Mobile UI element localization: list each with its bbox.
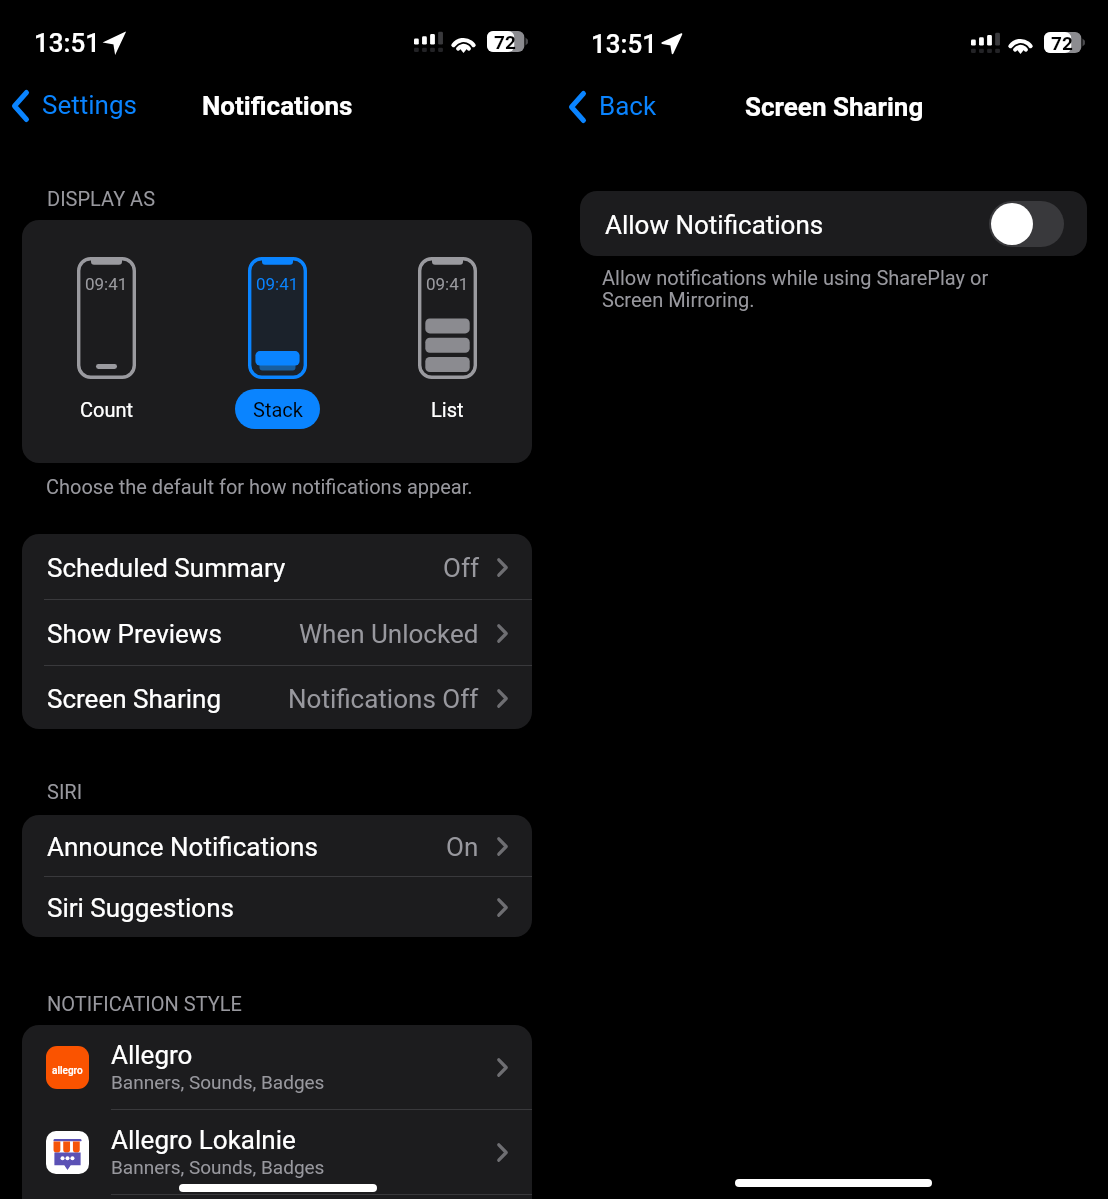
staticText: Allegro xyxy=(111,1040,193,1070)
staticText: SIRI xyxy=(47,780,83,803)
button[interactable]: Scheduled Summary xyxy=(22,534,532,599)
staticText: Banners, Sounds, Badges xyxy=(111,1156,325,1178)
staticText: When Unlocked xyxy=(299,619,479,649)
staticText: 13:51 xyxy=(34,28,101,58)
staticText: NOTIFICATION STYLE xyxy=(47,992,242,1015)
button[interactable]: Announce Notifications xyxy=(22,815,532,876)
button[interactable]: Allow Notifications toggle, off xyxy=(989,201,1064,247)
staticText: Allow notifications while using SharePla… xyxy=(602,266,989,312)
staticText: Screen Sharing xyxy=(745,92,924,122)
button[interactable]: Allow Notifications xyxy=(580,191,1087,256)
button[interactable]: 09:41 xyxy=(47,220,166,429)
staticText: Siri Suggestions xyxy=(47,893,234,923)
staticText: allegro xyxy=(52,1065,83,1077)
button[interactable]: Show Previews xyxy=(22,600,532,665)
staticText: Show Previews xyxy=(47,619,222,649)
button[interactable]: Back to Settings xyxy=(6,88,145,124)
staticText: Settings xyxy=(42,90,137,120)
button[interactable]: Back to Back xyxy=(563,89,665,125)
button[interactable]: allegro xyxy=(22,1025,532,1109)
staticText: 72 xyxy=(1051,32,1073,54)
staticText: Banners, Sounds, Badges xyxy=(111,1071,325,1093)
staticText: Allow Notifications xyxy=(605,210,824,240)
staticText: Count xyxy=(80,398,134,421)
staticText: List xyxy=(431,398,464,421)
staticText: Back xyxy=(599,91,657,121)
button[interactable]: Screen Sharing xyxy=(22,666,532,729)
staticText: Allegro Lokalnie xyxy=(111,1125,296,1155)
staticText: Announce Notifications xyxy=(47,832,318,862)
staticText: Screen Sharing xyxy=(47,684,221,714)
staticText: Notifications Off xyxy=(288,684,479,714)
staticText: Stack xyxy=(253,398,303,421)
staticText: 09:41 xyxy=(85,274,128,294)
staticText: 72 xyxy=(494,31,516,53)
button[interactable]: 09:41 xyxy=(218,220,337,429)
staticText: On xyxy=(446,832,479,862)
staticText: 13:51 xyxy=(591,29,658,59)
staticText: 09:41 xyxy=(426,274,469,294)
button[interactable]: Siri Suggestions xyxy=(22,877,532,937)
staticText: Scheduled Summary xyxy=(47,553,286,583)
staticText: DISPLAY AS xyxy=(47,187,156,210)
staticText: Off xyxy=(443,553,479,583)
button[interactable]: Allegro Lokalnie xyxy=(22,1110,532,1194)
button[interactable]: 09:41 xyxy=(388,220,507,429)
staticText: 09:41 xyxy=(256,274,299,294)
staticText: Choose the default for how notifications… xyxy=(46,475,473,498)
staticText: Notifications xyxy=(202,91,353,121)
